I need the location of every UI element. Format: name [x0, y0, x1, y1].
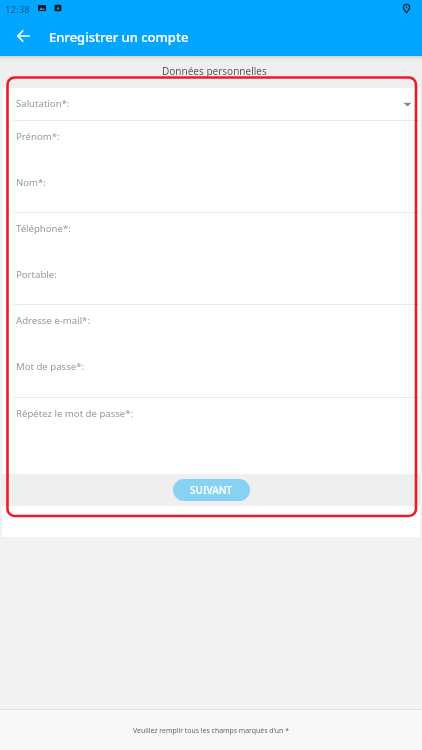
- staticText: Portable:: [16, 268, 57, 281]
- staticText: Répétez le mot de passe*:: [16, 407, 134, 420]
- button[interactable]: Téléphone*:: [2, 213, 420, 259]
- staticText: SUIVANT: [190, 483, 233, 497]
- button[interactable]: Prénom*:: [2, 121, 420, 167]
- button[interactable]: Salutation*:: [2, 88, 420, 121]
- staticText: Données personnelles: [162, 64, 267, 78]
- staticText: Mot de passe*:: [16, 360, 85, 373]
- other: Location: [403, 4, 410, 13]
- button[interactable]: Back: [11, 24, 35, 48]
- button[interactable]: SUIVANT: [173, 479, 250, 501]
- staticText: Prénom*:: [16, 130, 60, 143]
- button[interactable]: Adresse e-mail*:: [2, 305, 420, 351]
- staticText: Téléphone*:: [16, 222, 71, 235]
- button[interactable]: Nom*:: [2, 167, 420, 213]
- staticText: Nom*:: [16, 176, 46, 189]
- button[interactable]: Répétez le mot de passe*:: [2, 398, 420, 444]
- button[interactable]: Mot de passe*:: [2, 351, 420, 398]
- staticText: Veuillez remplir tous les champs marqués…: [133, 726, 289, 735]
- staticText: Enregistrer un compte: [49, 28, 189, 46]
- staticText: Salutation*:: [16, 97, 70, 110]
- staticText: 12:38: [5, 3, 30, 16]
- button[interactable]: Portable:: [2, 259, 420, 305]
- staticText: Adresse e-mail*:: [16, 314, 90, 327]
